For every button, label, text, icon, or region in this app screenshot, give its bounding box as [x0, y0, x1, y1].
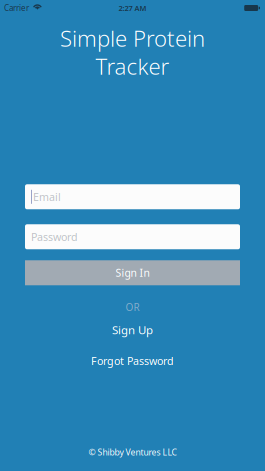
staticText: Sign Up — [112, 322, 153, 338]
button[interactable]: Forgot Password — [72, 352, 192, 370]
staticText: Forgot Password — [91, 354, 174, 368]
staticText: Email — [33, 189, 61, 204]
button[interactable]: Sign Up — [72, 321, 192, 339]
button[interactable]: Password — [25, 224, 240, 249]
staticText: Tracker — [95, 51, 169, 81]
staticText: Simple Protein — [60, 23, 205, 53]
button[interactable]: Sign In — [25, 260, 240, 285]
staticText: OR — [125, 300, 139, 314]
staticText: Sign In — [115, 266, 149, 280]
staticText: © Shibby Ventures LLC — [88, 446, 176, 458]
button[interactable]: Email — [25, 184, 240, 209]
staticText: Password — [31, 229, 78, 244]
staticText: 2:27 AM — [118, 3, 146, 13]
staticText: Carrier — [4, 3, 29, 13]
